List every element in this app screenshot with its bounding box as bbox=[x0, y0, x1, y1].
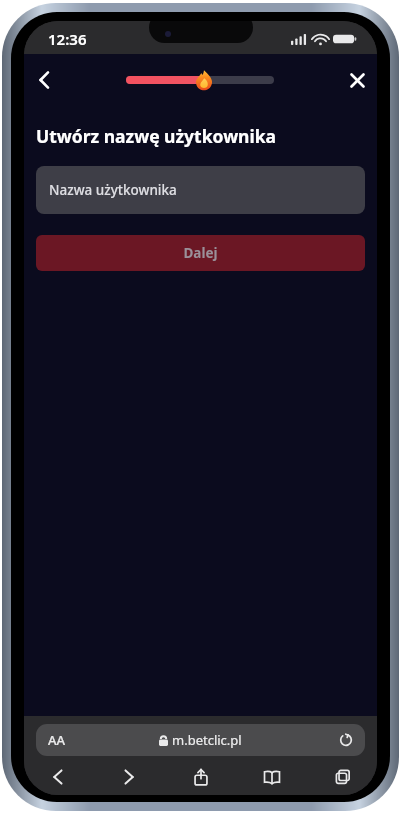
button[interactable]: Bookmarks bbox=[256, 761, 288, 793]
button[interactable]: Dalej bbox=[36, 235, 365, 271]
staticText: Nazwa użytkownika bbox=[49, 181, 177, 199]
button[interactable]: Close bbox=[337, 60, 377, 100]
staticText: Utwórz nazwę użytkownika bbox=[36, 124, 277, 148]
button[interactable]: Forward bbox=[113, 761, 145, 793]
staticText: 12:36 bbox=[48, 29, 87, 49]
button[interactable]: Tabs bbox=[327, 761, 359, 793]
button[interactable]: Back bbox=[24, 60, 64, 100]
button[interactable]: Share bbox=[185, 761, 217, 793]
button[interactable]: Reload bbox=[335, 729, 357, 751]
staticText: m.betclic.pl bbox=[172, 731, 242, 749]
staticText: Dalej bbox=[183, 244, 218, 262]
button[interactable]: AA bbox=[36, 724, 365, 756]
button[interactable]: Nazwa użytkownika bbox=[36, 166, 365, 214]
button[interactable]: Back bbox=[42, 761, 74, 793]
staticText: AA bbox=[48, 731, 66, 749]
